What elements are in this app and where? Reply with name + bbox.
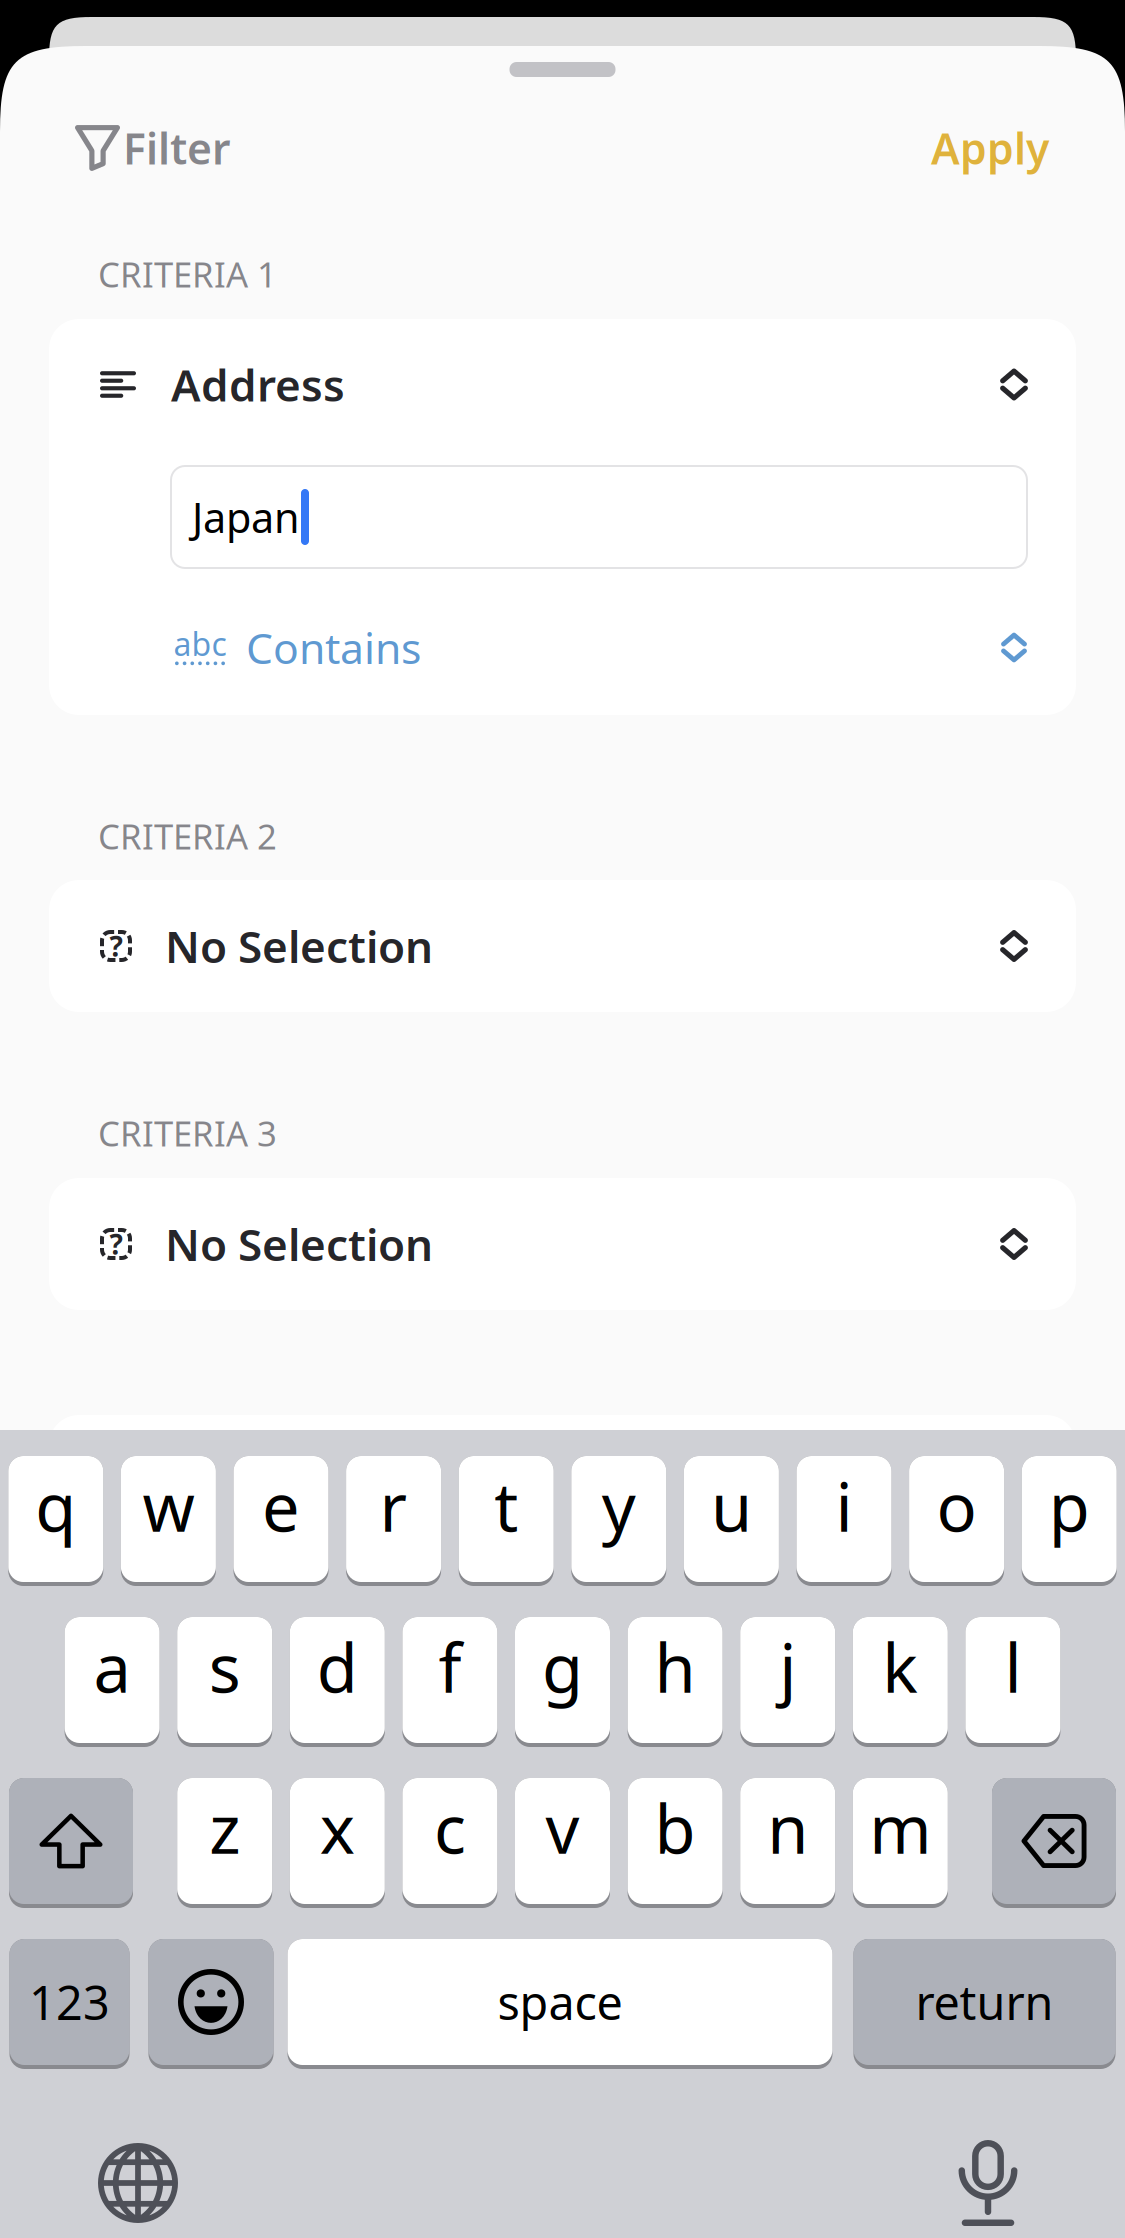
staticText: m — [869, 1784, 931, 1872]
button[interactable]: o — [909, 1454, 1004, 1584]
staticText: y — [602, 1462, 636, 1550]
staticText: p — [1049, 1462, 1090, 1550]
staticText: t — [494, 1462, 518, 1550]
button[interactable]: Shift — [9, 1776, 133, 1906]
button[interactable]: b — [628, 1776, 723, 1906]
staticText: Contains — [246, 619, 421, 676]
button[interactable]: Emoji — [148, 1937, 273, 2067]
staticText: e — [262, 1462, 300, 1550]
staticText: Filter — [123, 120, 231, 176]
staticText: i — [835, 1462, 852, 1550]
button[interactable]: Filter — [75, 120, 231, 176]
staticText: z — [209, 1784, 240, 1872]
staticText: return — [915, 1971, 1053, 2033]
staticText: l — [1004, 1623, 1021, 1711]
button[interactable]: q — [8, 1454, 103, 1584]
staticText: r — [380, 1462, 408, 1550]
staticText: n — [767, 1784, 808, 1872]
button[interactable]: i — [796, 1454, 891, 1584]
staticText: abc — [173, 622, 226, 665]
button[interactable]: t — [459, 1454, 554, 1584]
button[interactable]: d — [290, 1615, 385, 1745]
button[interactable]: abc — [49, 568, 1076, 715]
button[interactable]: Next keyboard — [58, 2133, 218, 2233]
staticText: CRITERIA 1 — [98, 251, 277, 297]
button[interactable]: f — [402, 1615, 497, 1745]
staticText: No Selection — [165, 917, 433, 975]
staticText: ? — [109, 1225, 122, 1263]
staticText: o — [937, 1462, 977, 1550]
button[interactable]: w — [121, 1454, 216, 1584]
button[interactable]: Address — [49, 319, 1076, 450]
button[interactable]: y — [571, 1454, 666, 1584]
staticText: g — [542, 1623, 583, 1711]
staticText: Japan — [192, 490, 300, 544]
button[interactable]: Dictate — [908, 2133, 1068, 2233]
staticText: x — [320, 1784, 355, 1872]
button[interactable]: v — [515, 1776, 610, 1906]
staticText: Apply — [931, 120, 1049, 176]
staticText: No Selection — [165, 1215, 433, 1273]
staticText: f — [438, 1623, 461, 1711]
staticText: q — [35, 1462, 76, 1550]
button[interactable]: l — [965, 1615, 1060, 1745]
staticText: CRITERIA 2 — [98, 813, 277, 859]
button[interactable]: k — [853, 1615, 948, 1745]
button[interactable]: c — [402, 1776, 497, 1906]
staticText: v — [545, 1784, 579, 1872]
staticText: b — [655, 1784, 696, 1872]
button[interactable]: ? — [49, 1178, 1076, 1310]
button[interactable]: r — [346, 1454, 441, 1584]
staticText: space — [497, 1971, 622, 2033]
staticText: u — [711, 1462, 752, 1550]
button[interactable]: Delete — [992, 1776, 1116, 1906]
staticText: CRITERIA 3 — [98, 1110, 277, 1156]
staticText: h — [655, 1623, 696, 1711]
staticText: c — [434, 1784, 466, 1872]
button[interactable]: space — [287, 1937, 832, 2067]
button[interactable]: Apply — [931, 120, 1049, 176]
button[interactable]: a — [65, 1615, 160, 1745]
button[interactable]: return — [853, 1937, 1115, 2067]
staticText: a — [94, 1623, 131, 1711]
button[interactable]: m — [853, 1776, 948, 1906]
staticText: Address — [171, 355, 345, 414]
button[interactable]: j — [740, 1615, 835, 1745]
button[interactable]: 123 — [9, 1937, 129, 2067]
button[interactable]: z — [177, 1776, 272, 1906]
button[interactable]: n — [740, 1776, 835, 1906]
staticText: ? — [109, 927, 122, 965]
button[interactable]: x — [290, 1776, 385, 1906]
button[interactable]: p — [1022, 1454, 1117, 1584]
button[interactable]: e — [233, 1454, 328, 1584]
button[interactable]: ? — [49, 880, 1076, 1012]
button[interactable]: u — [684, 1454, 779, 1584]
staticText: k — [882, 1623, 918, 1711]
button[interactable]: g — [515, 1615, 610, 1745]
button[interactable]: s — [177, 1615, 272, 1745]
button[interactable]: h — [628, 1615, 723, 1745]
staticText: w — [142, 1462, 194, 1550]
staticText: 123 — [29, 1971, 110, 2033]
staticText: s — [209, 1623, 241, 1711]
staticText: d — [317, 1623, 358, 1711]
staticText: j — [779, 1623, 796, 1711]
